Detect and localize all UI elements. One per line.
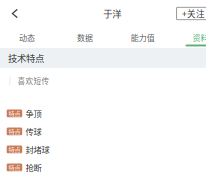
staticText: 技术特点 — [8, 51, 44, 65]
staticText: 争顶 — [25, 107, 41, 119]
staticText: +关注 — [182, 7, 205, 20]
staticText: 特点 — [8, 127, 20, 136]
button[interactable]: Back — [4, 2, 26, 24]
button[interactable]: 特点 — [0, 104, 206, 122]
staticText: 资料 — [193, 32, 206, 43]
button[interactable]: 数据 — [56, 27, 114, 48]
button[interactable]: 资料 — [172, 27, 206, 48]
button[interactable]: 特点 — [0, 158, 206, 176]
staticText: 传球 — [25, 125, 41, 137]
button[interactable]: 能力值 — [114, 27, 172, 48]
staticText: 数据 — [77, 32, 93, 43]
staticText: 特点 — [8, 109, 20, 118]
staticText: 抢断 — [25, 161, 41, 173]
staticText: 封堵球 — [25, 143, 49, 155]
button[interactable]: 特点 — [0, 140, 206, 158]
staticText: 动态 — [19, 32, 35, 43]
button[interactable]: 动态 — [0, 27, 56, 48]
staticText: 特点 — [8, 163, 20, 172]
staticText: 于洋 — [103, 7, 121, 20]
staticText: 能力值 — [131, 32, 155, 43]
button[interactable]: +关注 — [177, 7, 206, 20]
staticText: 特点 — [8, 145, 20, 154]
staticText: 喜欢短传 — [17, 75, 49, 86]
button[interactable]: 特点 — [0, 122, 206, 140]
